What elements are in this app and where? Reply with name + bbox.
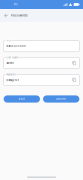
staticText: Password bbox=[6, 73, 15, 76]
staticText: Delete bbox=[56, 97, 66, 101]
staticText: admin bbox=[6, 61, 14, 65]
button[interactable]: Copy Password bbox=[71, 74, 77, 86]
staticText: Passwords bbox=[11, 14, 28, 17]
button[interactable]: Edit bbox=[4, 95, 40, 103]
button[interactable]: Copy User Name bbox=[71, 57, 77, 69]
staticText: Title bbox=[6, 39, 11, 42]
button[interactable]: Back bbox=[1, 9, 11, 22]
button[interactable]: Delete bbox=[43, 95, 79, 103]
staticText: 37% bbox=[14, 3, 18, 6]
staticText: pass@123 bbox=[6, 78, 19, 81]
staticText: Bank Account bbox=[6, 44, 26, 48]
staticText: User Name bbox=[6, 56, 18, 59]
staticText: Edit bbox=[19, 97, 25, 101]
